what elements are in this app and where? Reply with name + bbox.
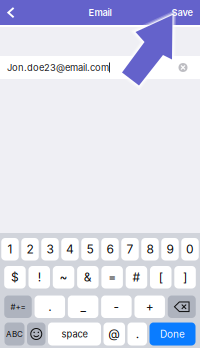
button[interactable]: ! — [28, 266, 50, 288]
button[interactable]: ~ — [53, 266, 74, 288]
staticText: #+= — [10, 302, 25, 312]
button[interactable]: #+= — [4, 295, 32, 318]
button[interactable]: 7 — [121, 238, 139, 260]
staticText: 7 — [126, 242, 133, 256]
staticText: 9 — [166, 242, 173, 256]
staticText: $ — [11, 270, 19, 284]
staticText: 2 — [26, 242, 33, 256]
button[interactable]: ] — [174, 266, 196, 288]
staticText: . — [136, 327, 139, 341]
button[interactable]: 9 — [161, 238, 179, 260]
staticText: [ — [159, 270, 163, 284]
button[interactable]: # — [126, 266, 147, 288]
staticText: space — [61, 328, 87, 340]
staticText: 5 — [86, 242, 93, 256]
button[interactable]: $ — [4, 266, 26, 288]
button[interactable]: @ — [103, 322, 125, 345]
staticText: # — [132, 270, 140, 284]
button[interactable]: & — [77, 266, 99, 288]
staticText: 4 — [66, 242, 74, 256]
staticText: Email — [88, 7, 111, 18]
staticText: 0 — [186, 242, 194, 256]
staticText: Jon.doe23@email.com — [7, 62, 109, 73]
staticText: 8 — [146, 242, 153, 256]
button[interactable]: 4 — [61, 238, 79, 260]
button[interactable]: 3 — [41, 238, 59, 260]
staticText: Save — [171, 7, 193, 18]
button[interactable]: space — [48, 322, 101, 345]
staticText: Done — [160, 328, 185, 340]
button[interactable]: Clear text — [172, 56, 194, 78]
button[interactable]: ABC — [4, 322, 24, 345]
staticText: = — [108, 270, 116, 284]
staticText: 3 — [46, 242, 53, 256]
button[interactable]: . — [34, 295, 65, 318]
staticText: 1 — [7, 242, 12, 256]
staticText: 6 — [106, 242, 113, 256]
button[interactable]: . — [127, 322, 147, 345]
button[interactable]: 6 — [101, 238, 119, 260]
button[interactable]: Save — [165, 0, 200, 25]
button[interactable]: 1 — [1, 238, 19, 260]
staticText: . — [48, 299, 51, 314]
button[interactable]: 0 — [181, 238, 199, 260]
button[interactable]: Emoji keyboard — [27, 322, 45, 345]
button[interactable]: Done — [149, 322, 195, 345]
staticText: ! — [38, 270, 41, 284]
button[interactable]: - — [101, 295, 132, 318]
button[interactable]: Back — [0, 0, 22, 25]
staticText: ~ — [60, 270, 68, 284]
staticText: ABC — [6, 329, 23, 339]
button[interactable]: _ — [68, 295, 98, 318]
staticText: @ — [108, 327, 120, 341]
button[interactable]: + — [134, 295, 165, 318]
button[interactable]: 5 — [81, 238, 99, 260]
button[interactable]: = — [101, 266, 123, 288]
staticText: ] — [183, 270, 187, 284]
staticText: - — [113, 299, 119, 314]
staticText: _ — [81, 299, 86, 314]
button[interactable]: Delete — [168, 295, 196, 318]
staticText: & — [84, 270, 92, 284]
staticText: + — [146, 299, 154, 314]
button[interactable]: [ — [150, 266, 171, 288]
button[interactable]: 8 — [141, 238, 159, 260]
button[interactable]: 2 — [21, 238, 39, 260]
